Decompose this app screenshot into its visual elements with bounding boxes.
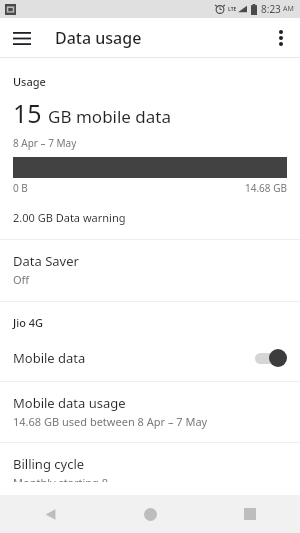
button[interactable]: Data Saver [0, 240, 300, 301]
button[interactable]: Billing cycle [0, 443, 300, 495]
staticText: 14.68 GB used between 8 Apr – 7 May [13, 414, 208, 429]
button[interactable]: Back [0, 495, 100, 533]
staticText: Billing cycle [13, 455, 85, 473]
staticText: AM [283, 4, 294, 14]
staticText: 2.00 GB Data warning [13, 210, 126, 225]
button[interactable]: Recent apps [200, 495, 300, 533]
staticText: Monthly starting 8 [13, 475, 108, 482]
staticText: Off [13, 272, 30, 287]
button[interactable]: Mobile data usage [0, 382, 300, 442]
button[interactable]: Mobile data [0, 335, 300, 381]
staticText: Mobile data [13, 349, 253, 367]
staticText: 0 B [13, 181, 28, 195]
staticText: 14.68 GB [245, 181, 287, 195]
staticText: Mobile data usage [13, 394, 126, 412]
staticText: 8:23 [261, 2, 281, 16]
button[interactable]: Jio 4G [0, 302, 300, 335]
staticText: 8 Apr – 7 May [13, 136, 77, 150]
staticText: Data usage [55, 27, 142, 49]
staticText: LTE [228, 6, 237, 13]
staticText: Data Saver [13, 252, 79, 270]
button[interactable]: Navigation menu [8, 24, 36, 52]
staticText: Usage [13, 74, 46, 89]
button[interactable]: Home [100, 495, 200, 533]
button[interactable]: More options [267, 24, 295, 52]
button[interactable]: Mobile data toggle [253, 348, 287, 368]
staticText: Jio 4G [13, 315, 44, 330]
staticText: 15 GB mobile data [13, 96, 172, 130]
